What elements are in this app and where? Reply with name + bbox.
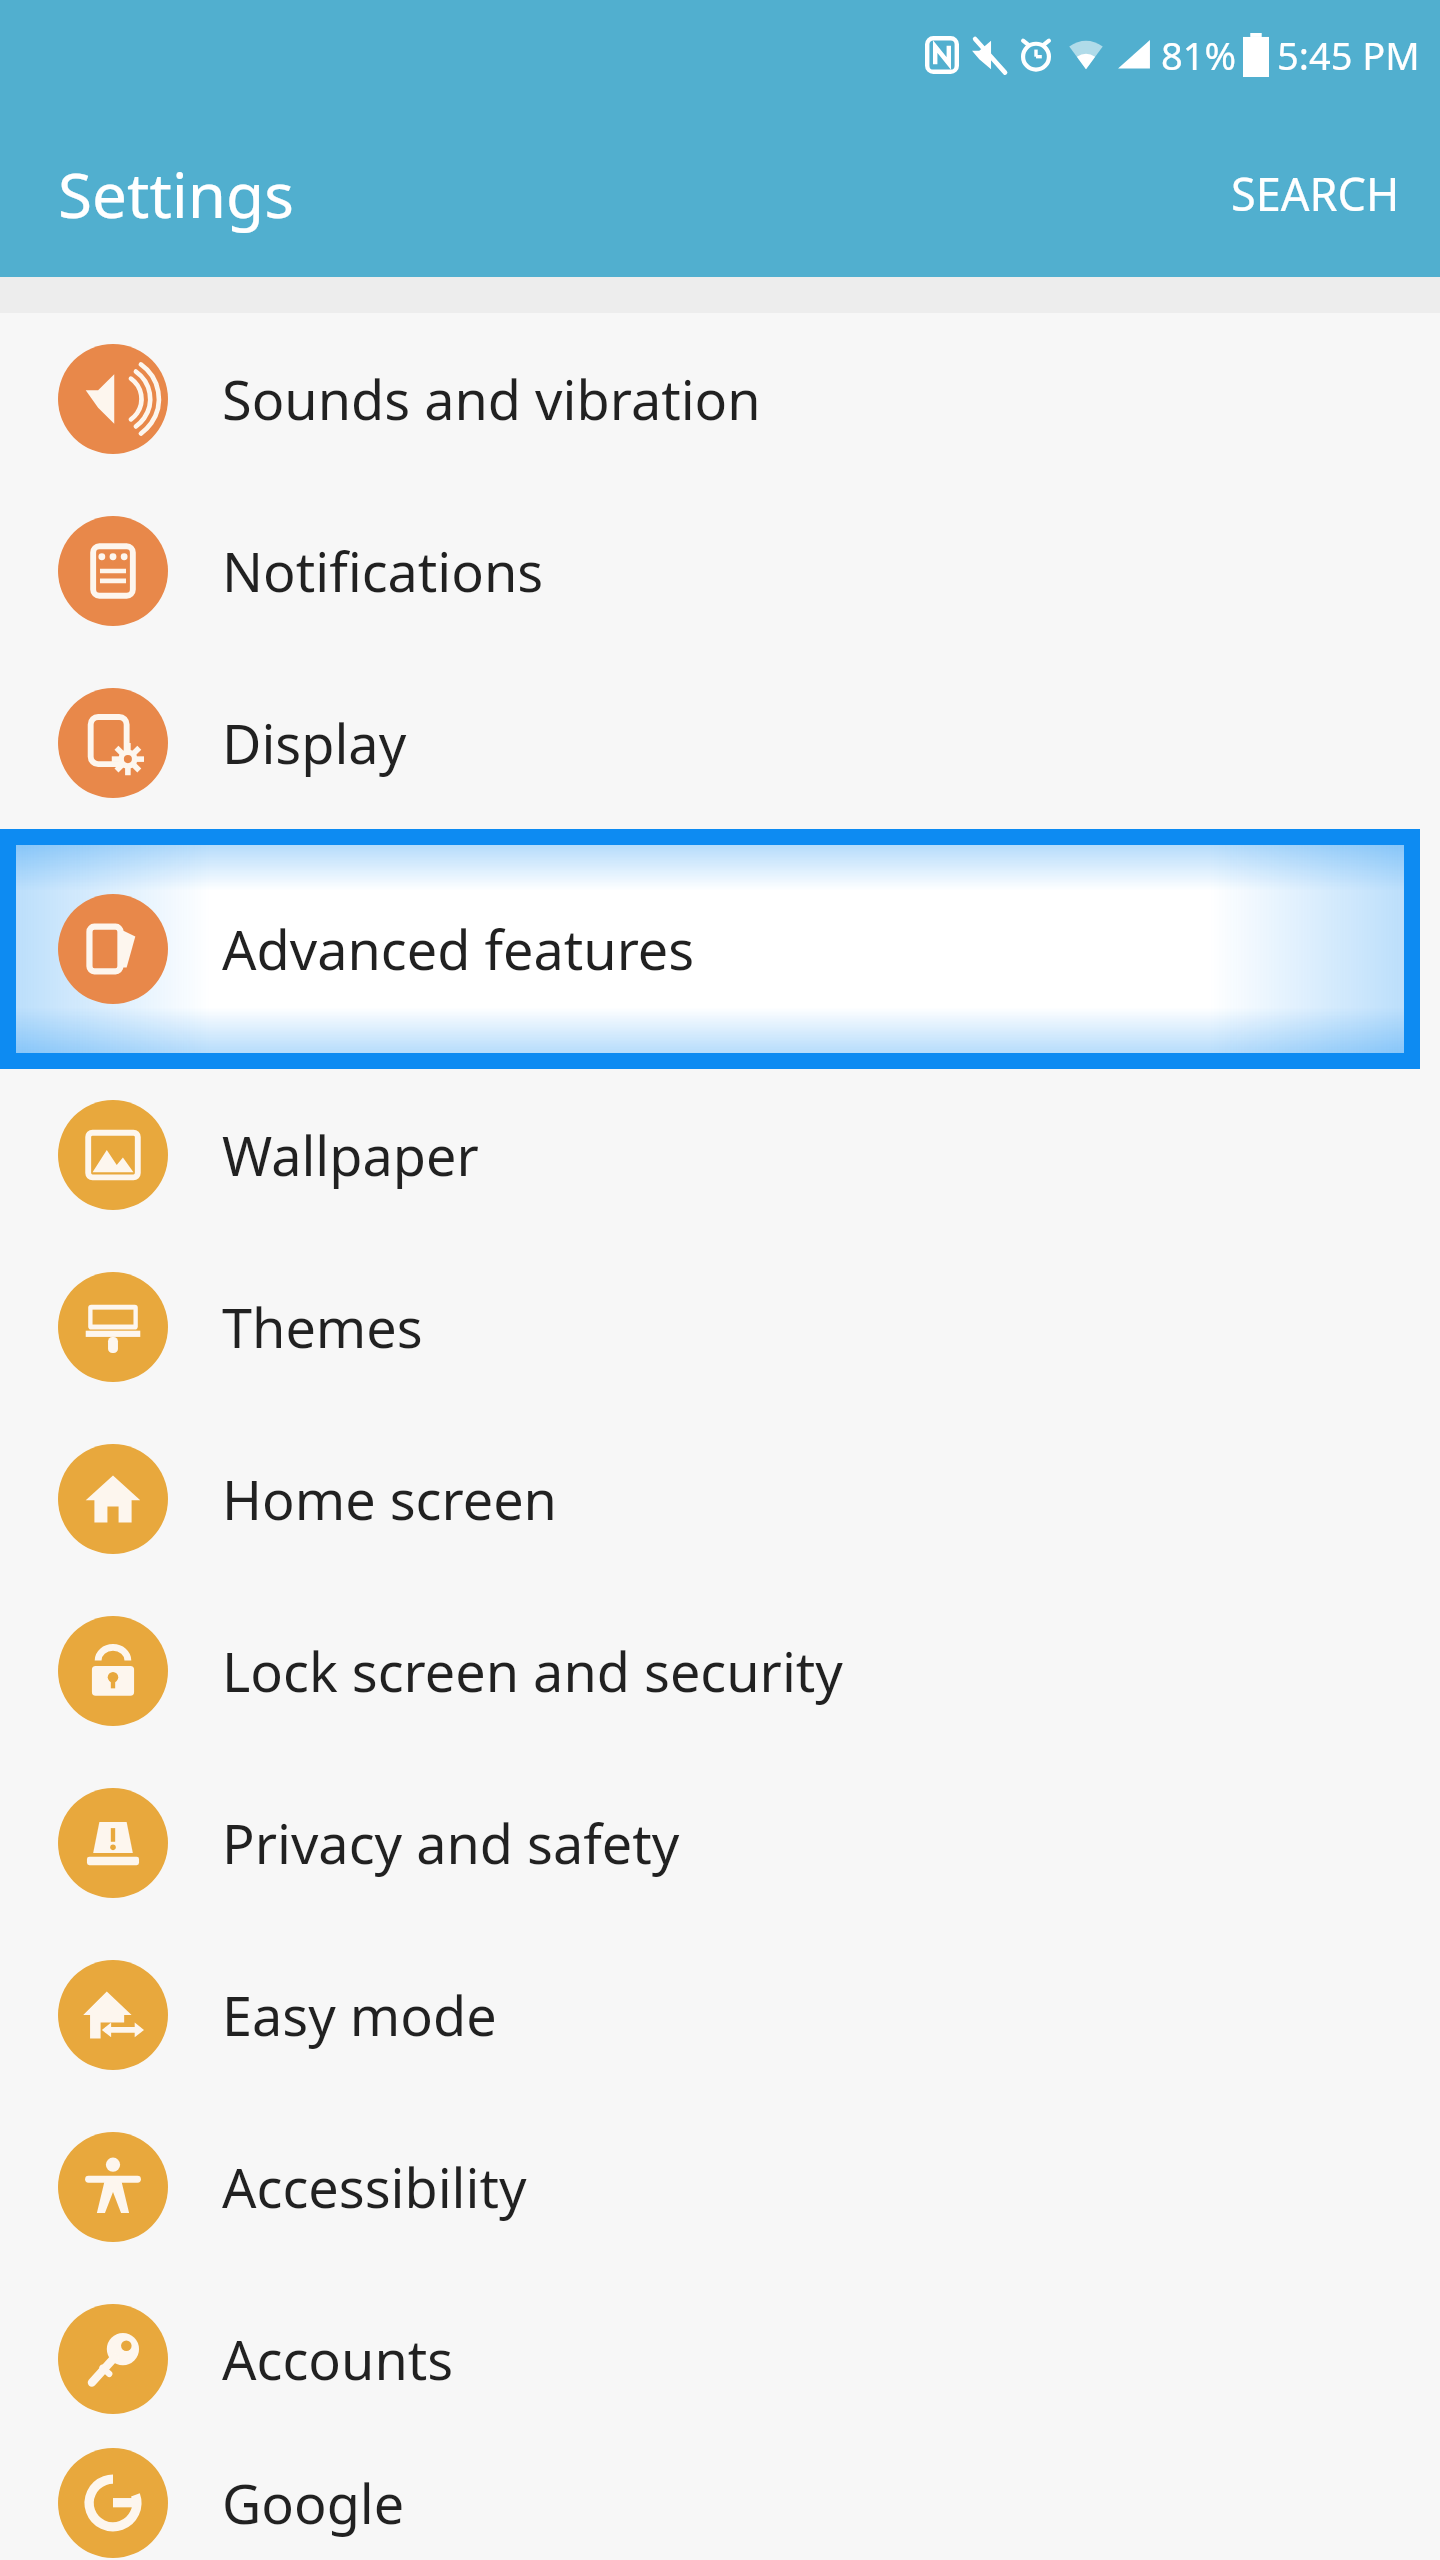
button[interactable]: Display [0,657,1440,829]
staticText: 81% [1161,29,1237,81]
staticText: Home screen [222,1462,557,1536]
staticText: Wallpaper [222,1118,479,1192]
staticText: Display [222,706,407,780]
button[interactable]: Sounds and vibration [0,313,1440,485]
staticText: Settings [58,152,294,236]
staticText: Advanced features [222,912,695,986]
button[interactable]: Accessibility [0,2101,1440,2273]
staticText: Accessibility [222,2150,527,2224]
button[interactable]: Themes [0,1241,1440,1413]
staticText: Notifications [222,534,544,608]
button[interactable]: Wallpaper [0,1069,1440,1241]
staticText: SEARCH [1231,163,1400,224]
button[interactable]: Home screen [0,1413,1440,1585]
staticText: Lock screen and security [222,1634,843,1708]
button[interactable]: Lock screen and security [0,1585,1440,1757]
button[interactable]: Google [0,2445,1440,2560]
staticText: Privacy and safety [222,1806,680,1880]
button[interactable]: Notifications [0,485,1440,657]
staticText: Sounds and vibration [222,362,761,436]
button[interactable]: Easy mode [0,1929,1440,2101]
staticText: Accounts [222,2322,454,2396]
staticText: Themes [222,1290,423,1364]
staticText: 5:45 PM [1277,29,1420,81]
button[interactable]: Privacy and safety [0,1757,1440,1929]
staticText: Google [222,2466,405,2540]
button[interactable]: Accounts [0,2273,1440,2445]
button[interactable]: SEARCH [1191,137,1440,250]
staticText: Easy mode [222,1978,497,2052]
button[interactable]: Advanced features [16,845,1404,1053]
